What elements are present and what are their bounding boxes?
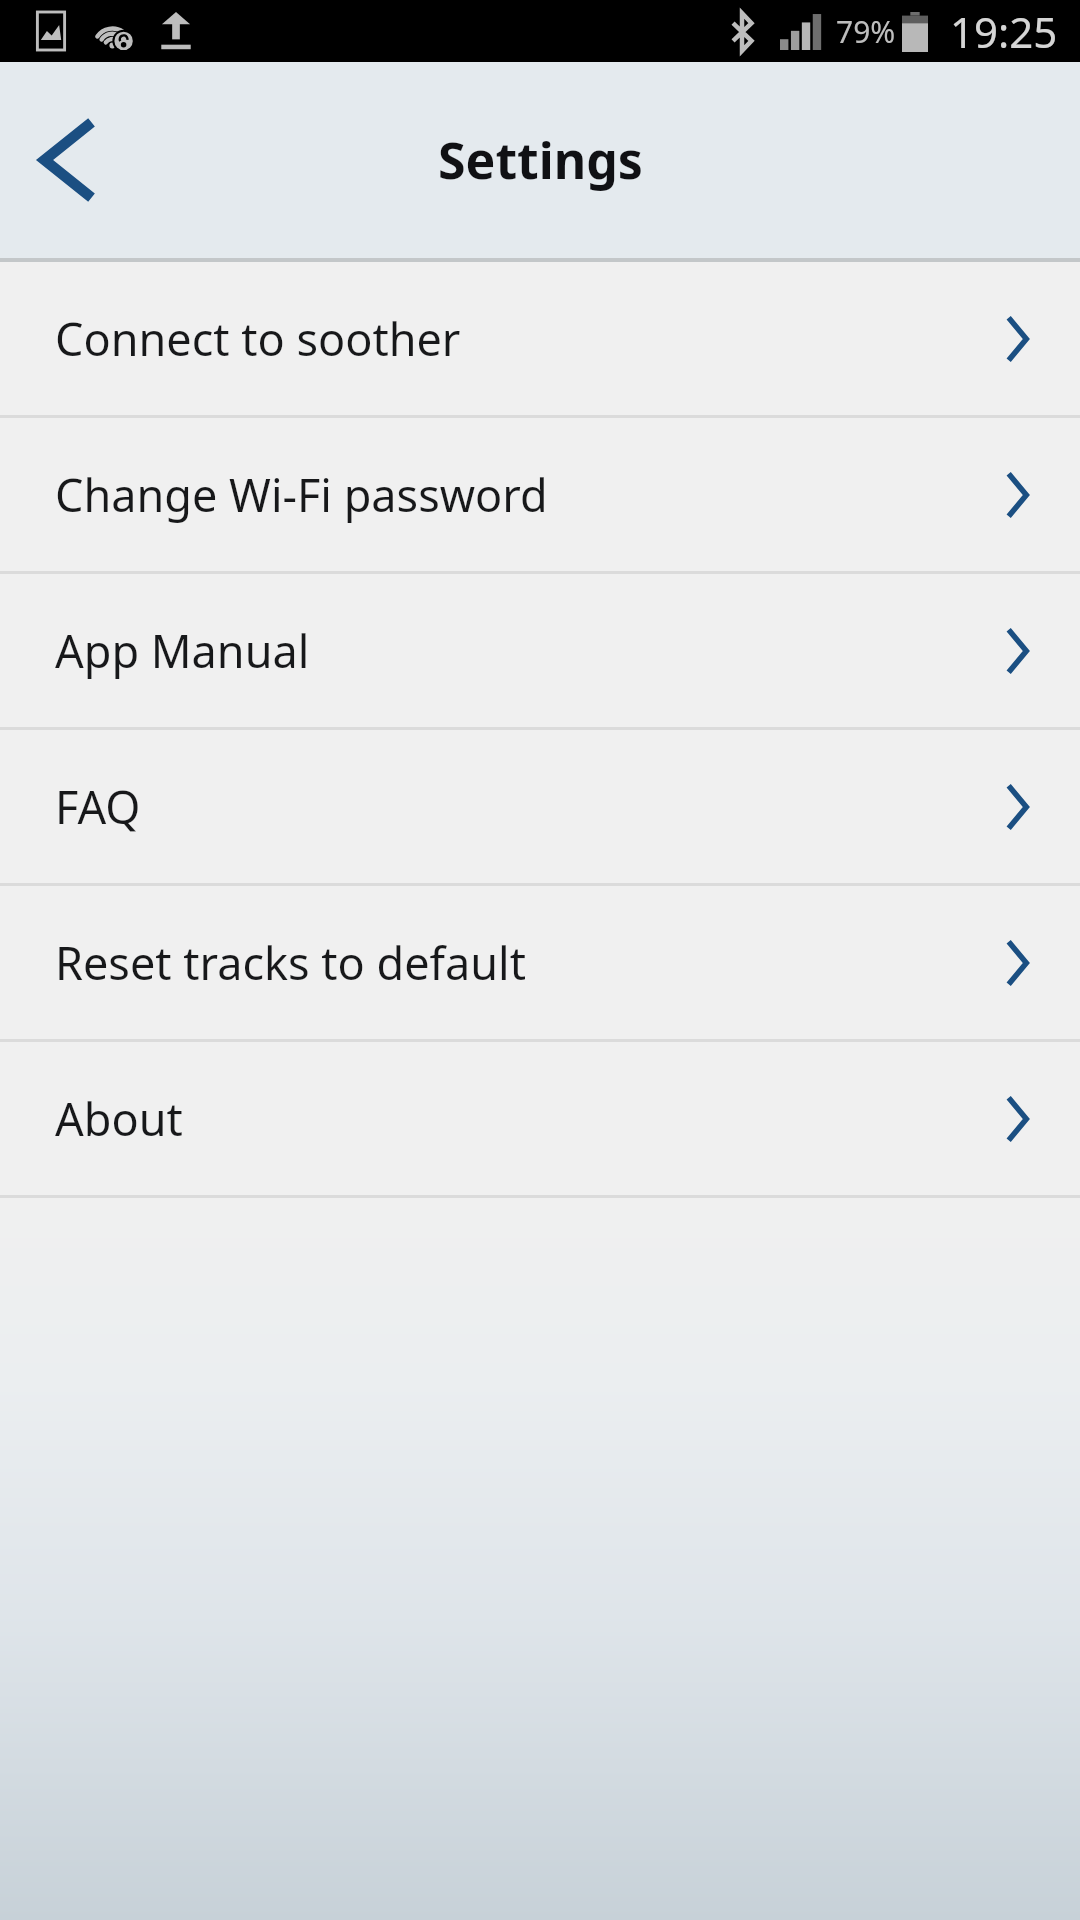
button[interactable]: Back: [18, 105, 118, 215]
staticText: About: [55, 1088, 1004, 1149]
button[interactable]: About: [0, 1042, 1080, 1195]
button[interactable]: Change Wi-Fi password: [0, 418, 1080, 571]
staticText: 79%: [836, 11, 896, 52]
button[interactable]: App Manual: [0, 574, 1080, 727]
staticText: Connect to soother: [55, 308, 1004, 369]
staticText: FAQ: [55, 776, 1004, 837]
staticText: Change Wi-Fi password: [55, 464, 1004, 525]
button[interactable]: Reset tracks to default: [0, 886, 1080, 1039]
staticText: App Manual: [55, 620, 1004, 681]
button[interactable]: FAQ: [0, 730, 1080, 883]
staticText: Reset tracks to default: [55, 932, 1004, 993]
staticText: 19:25: [950, 3, 1058, 60]
staticText: Settings: [438, 126, 643, 194]
button[interactable]: Connect to soother: [0, 262, 1080, 415]
